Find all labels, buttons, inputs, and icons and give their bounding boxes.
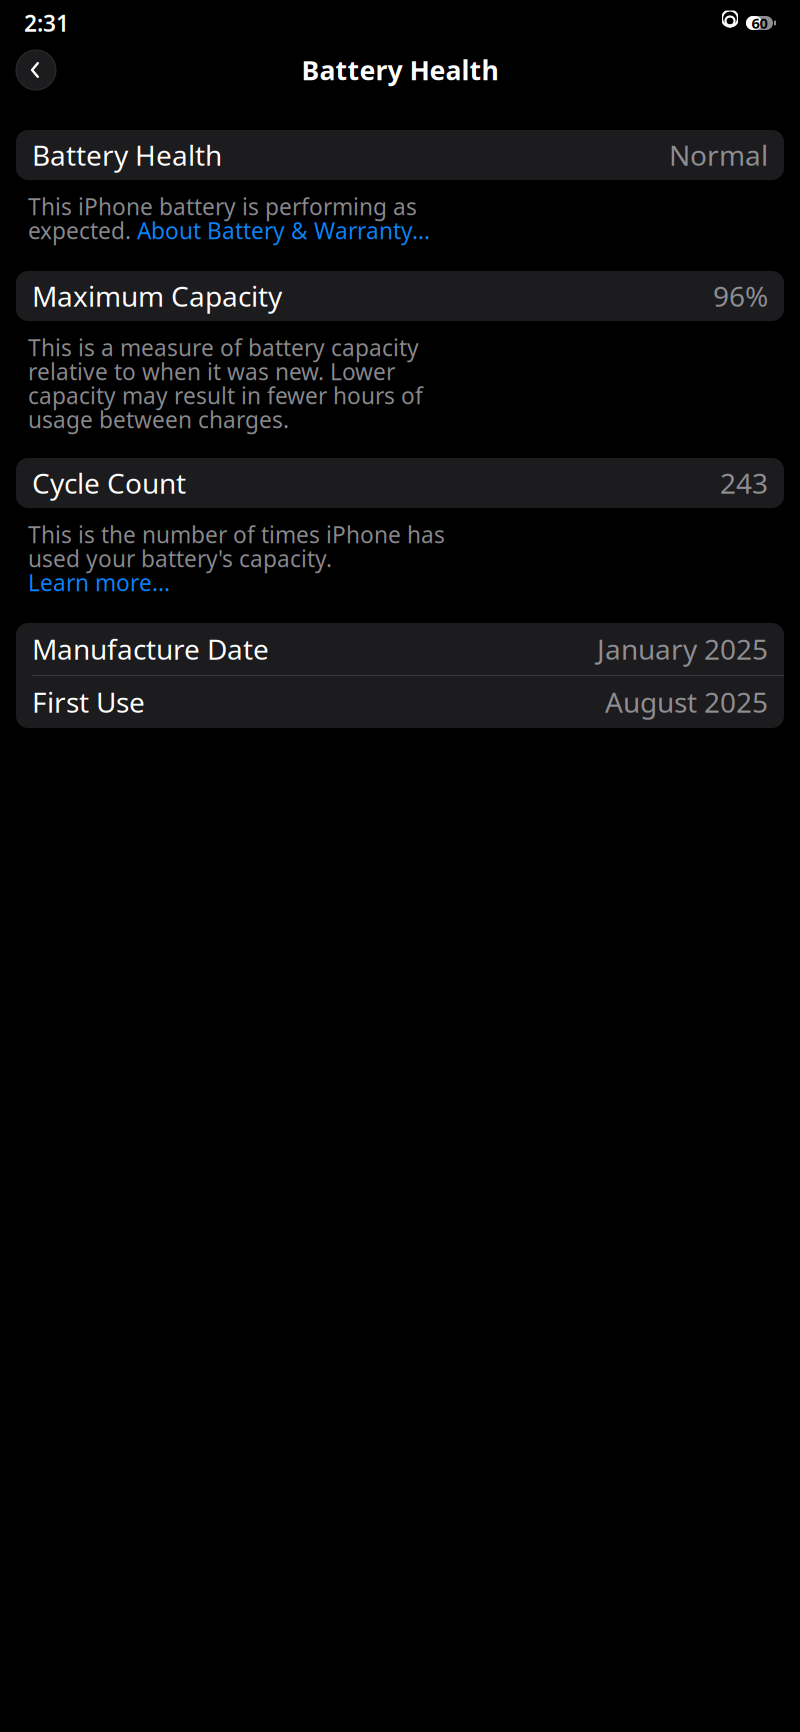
button[interactable]: Learn more... (28, 567, 170, 597)
button[interactable]: Manufacture Date (16, 623, 784, 675)
staticText: Battery Health (301, 52, 498, 88)
staticText: This is the number of times iPhone has (28, 519, 445, 549)
staticText: First Use (32, 683, 145, 721)
staticText: capacity may result in fewer hours of (28, 380, 423, 410)
staticText: This is a measure of battery capacity (28, 332, 419, 362)
staticText: usage between charges. (28, 404, 289, 434)
staticText: Battery Health (32, 136, 222, 174)
button[interactable]: Battery Health (16, 130, 784, 180)
staticText: Cycle Count (32, 464, 186, 502)
staticText: August 2025 (605, 683, 768, 721)
button[interactable]: First Use (16, 676, 784, 728)
button[interactable]: Cycle Count (16, 458, 784, 508)
staticText: 2:31 (24, 8, 69, 38)
staticText: 96% (713, 277, 768, 315)
staticText: used your battery's capacity. (28, 543, 332, 573)
staticText: January 2025 (597, 630, 768, 668)
staticText: expected. (28, 215, 137, 245)
button[interactable]: Back (16, 50, 56, 90)
staticText: This iPhone battery is performing as (28, 191, 417, 221)
button[interactable]: About Battery & Warranty... (137, 215, 430, 245)
staticText: 243 (720, 464, 768, 502)
staticText: Learn more... (28, 567, 170, 597)
staticText: Manufacture Date (32, 630, 269, 668)
staticText: 60 (751, 13, 767, 33)
staticText: Normal (669, 136, 768, 174)
staticText: Maximum Capacity (32, 277, 282, 315)
button[interactable]: Maximum Capacity (16, 271, 784, 321)
staticText: About Battery & Warranty... (137, 215, 430, 245)
staticText: relative to when it was new. Lower (28, 356, 395, 386)
